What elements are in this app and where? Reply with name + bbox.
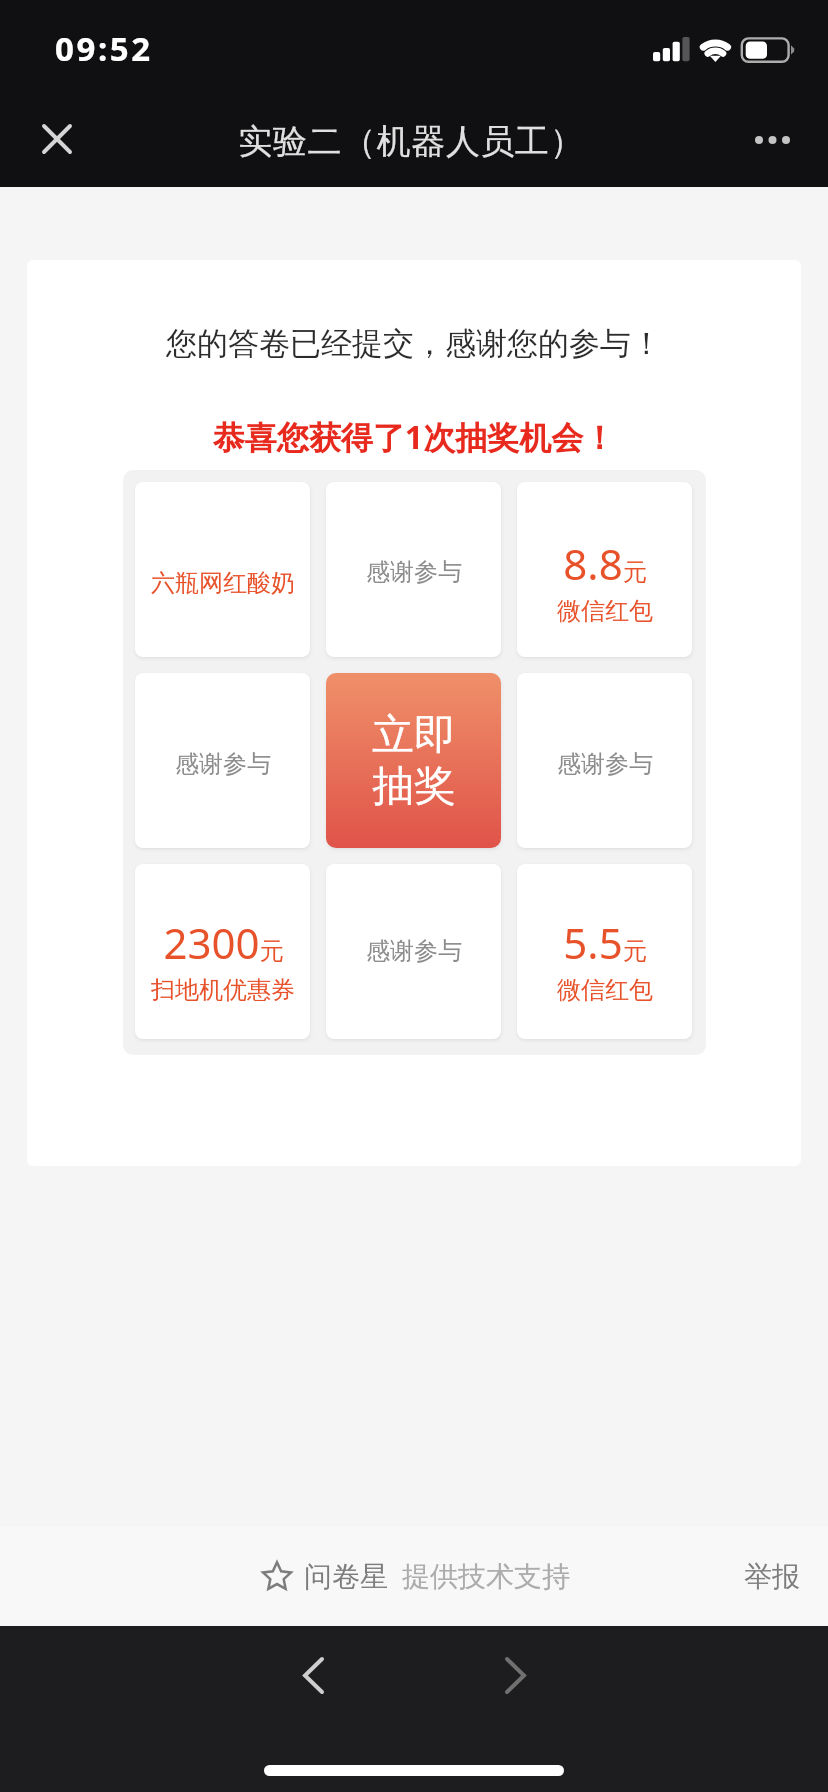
button[interactable]: 六瓶网红酸奶 xyxy=(135,482,310,657)
button[interactable]: 8.8元 xyxy=(517,482,692,657)
staticText: 2300元 xyxy=(163,914,284,971)
staticText: 感谢参与 xyxy=(366,936,462,966)
staticText: 微信红包 xyxy=(557,596,653,626)
staticText: 恭喜您获得了1次抽奖机会！ xyxy=(27,415,801,459)
button[interactable]: Close xyxy=(22,104,92,174)
staticText: 您的答卷已经提交，感谢您的参与！ xyxy=(27,324,801,363)
staticText: 感谢参与 xyxy=(175,749,271,779)
staticText: 5.5元 xyxy=(563,914,647,971)
button[interactable]: Back xyxy=(281,1643,345,1707)
button[interactable]: 感谢参与 xyxy=(326,482,501,657)
button[interactable]: 感谢参与 xyxy=(517,673,692,848)
staticText: 实验二（机器人员工） xyxy=(238,120,584,163)
staticText: 提供技术支持 xyxy=(402,1559,570,1594)
staticText: 微信红包 xyxy=(557,975,653,1005)
staticText: 感谢参与 xyxy=(366,557,462,587)
staticText: 立即 抽奖 xyxy=(372,709,456,813)
staticText: 问卷星 xyxy=(304,1559,388,1594)
button[interactable]: Forward xyxy=(483,1643,547,1707)
staticText: 扫地机优惠券 xyxy=(151,975,295,1005)
staticText: 09:52 xyxy=(55,26,153,71)
button[interactable]: 5.5元 xyxy=(517,864,692,1039)
button[interactable]: 立即 抽奖 xyxy=(326,673,501,848)
staticText: 8.8元 xyxy=(563,535,647,592)
button[interactable]: 感谢参与 xyxy=(135,673,310,848)
staticText: 六瓶网红酸奶 xyxy=(151,568,295,598)
button[interactable]: 问卷星 xyxy=(256,1551,576,1602)
button[interactable]: More options xyxy=(738,105,808,175)
staticText: 举报 xyxy=(744,1559,800,1594)
button[interactable]: 举报 xyxy=(734,1549,810,1604)
button[interactable]: 感谢参与 xyxy=(326,864,501,1039)
staticText: 感谢参与 xyxy=(557,749,653,779)
button[interactable]: 2300元 xyxy=(135,864,310,1039)
